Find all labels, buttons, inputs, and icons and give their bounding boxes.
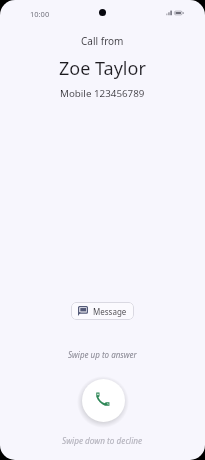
staticText: Call from: [81, 34, 124, 48]
staticText: 10:00: [30, 9, 50, 19]
staticText: Swipe up to answer: [68, 349, 137, 360]
staticText: Zoe Taylor: [59, 56, 146, 81]
staticText: Mobile 123456789: [60, 87, 145, 100]
button[interactable]: Message: [71, 302, 134, 320]
staticText: Swipe down to decline: [62, 435, 143, 446]
button[interactable]: Answer call: [82, 379, 125, 422]
staticText: Message: [93, 306, 127, 317]
